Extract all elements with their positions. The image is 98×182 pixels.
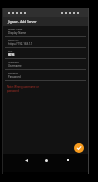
staticText: Server Url [8,39,19,42]
staticText: Password [8,75,21,79]
button[interactable]: Port [3,48,88,59]
staticText: Display Name [8,28,23,31]
button[interactable]: Recents [63,155,73,165]
staticText: Display Name [8,31,27,35]
button[interactable]: Display Name [3,26,88,37]
staticText: Username [8,64,22,68]
staticText: Password [8,72,18,75]
button[interactable]: Server Url [3,37,88,48]
button[interactable]: Username [3,59,88,70]
staticText: Jigsaw - Add Server [8,20,37,24]
staticText: https://192.168.1.1 [8,42,33,46]
staticText: 8096 [8,53,15,57]
button[interactable]: Back [21,155,31,165]
button[interactable]: Password [3,70,88,81]
staticText: Username [8,61,19,64]
staticText: Port [8,50,13,53]
button[interactable]: Save server [74,143,84,153]
staticText: Note: Wrong username or password [7,85,39,92]
button[interactable]: Home [41,155,51,165]
